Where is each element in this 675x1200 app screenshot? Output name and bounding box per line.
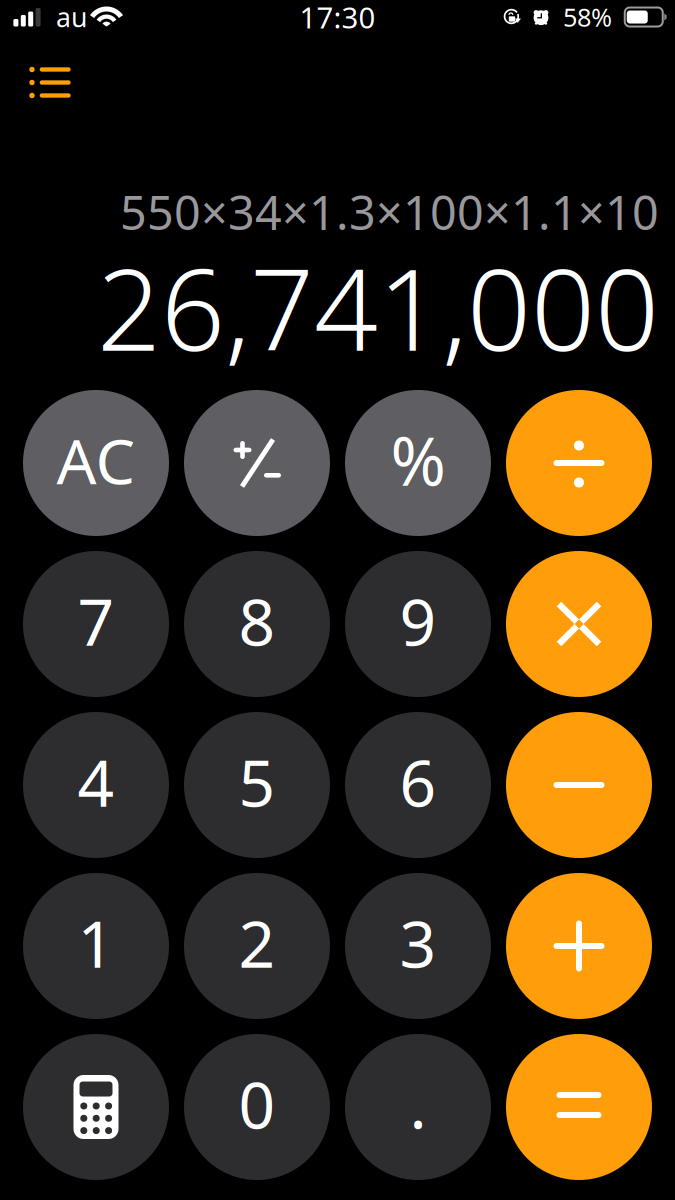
staticText: 5 (238, 739, 275, 824)
button[interactable]: Plus minus (184, 390, 330, 536)
staticText: au (56, 0, 87, 35)
button[interactable]: 7 (23, 551, 169, 697)
button[interactable]: % (345, 390, 491, 536)
staticText: 2 (238, 900, 275, 985)
staticText: 6 (399, 739, 436, 824)
button[interactable]: . (345, 1034, 491, 1180)
staticText: 9 (399, 578, 436, 663)
button[interactable]: Minus (506, 712, 652, 858)
button[interactable]: 6 (345, 712, 491, 858)
staticText: % (390, 416, 445, 504)
button[interactable]: 2 (184, 873, 330, 1019)
button[interactable]: 5 (184, 712, 330, 858)
button[interactable]: AC (23, 390, 169, 536)
button[interactable]: Equals (506, 1034, 652, 1180)
button[interactable]: Calculator (23, 1034, 169, 1180)
staticText: 26,741,000 (97, 233, 659, 382)
button[interactable]: 9 (345, 551, 491, 697)
button[interactable]: 3 (345, 873, 491, 1019)
staticText: 4 (77, 739, 114, 824)
staticText: 1 (77, 900, 114, 985)
staticText: 7 (77, 578, 114, 663)
button[interactable]: Divide (506, 390, 652, 536)
button[interactable]: 1 (23, 873, 169, 1019)
staticText: 3 (399, 900, 436, 985)
button[interactable]: Multiply (506, 551, 652, 697)
button[interactable]: 4 (23, 712, 169, 858)
staticText: 550×34×1.3×100×1.1×10 (120, 181, 659, 243)
staticText: 58% (563, 0, 612, 34)
button[interactable]: History (0, 54, 93, 111)
button[interactable]: 0 (184, 1034, 330, 1180)
staticText: 8 (238, 578, 275, 663)
staticText: AC (56, 418, 135, 502)
button[interactable]: 8 (184, 551, 330, 697)
staticText: . (409, 1061, 426, 1146)
button[interactable]: Plus (506, 873, 652, 1019)
staticText: 17:30 (299, 0, 375, 36)
staticText: 0 (238, 1061, 275, 1146)
